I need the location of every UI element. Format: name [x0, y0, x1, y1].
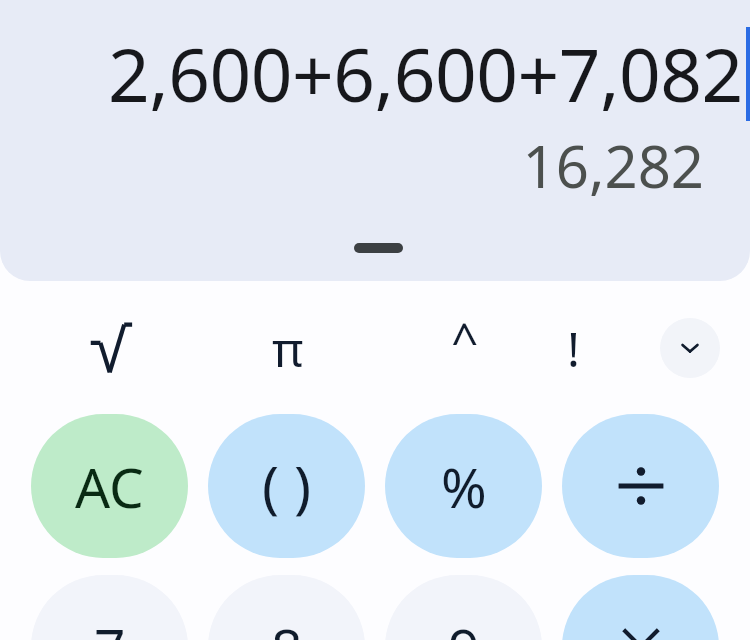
staticText: AC	[75, 449, 144, 524]
button[interactable]: Multiply	[562, 575, 719, 640]
button[interactable]: Divide	[562, 414, 719, 558]
staticText: ^	[451, 312, 479, 372]
staticText: ( )	[262, 447, 312, 525]
staticText: %	[441, 449, 487, 524]
button[interactable]: Parentheses	[208, 414, 365, 558]
staticText: !	[567, 316, 580, 381]
button[interactable]: 9	[385, 575, 542, 640]
button[interactable]: Percent	[385, 414, 542, 558]
button[interactable]: ^	[386, 312, 543, 384]
button[interactable]: π	[209, 312, 366, 384]
staticText: 16,282	[522, 126, 704, 204]
button[interactable]: 16,282	[0, 126, 750, 204]
staticText: 7	[94, 610, 126, 640]
button[interactable]	[32, 312, 189, 384]
button[interactable]: Show more functions	[660, 318, 720, 378]
staticText: 9	[448, 610, 480, 640]
staticText: π	[272, 316, 304, 381]
staticText: 2,600+6,600+7,082	[108, 24, 743, 123]
staticText: 8	[271, 610, 303, 640]
button[interactable]: AC	[31, 414, 188, 558]
button[interactable]: Expand history	[0, 243, 750, 281]
button[interactable]: !	[495, 312, 652, 384]
button[interactable]: 7	[31, 575, 188, 640]
button[interactable]: 2,600+6,600+7,082	[0, 18, 750, 128]
button[interactable]: 8	[208, 575, 365, 640]
